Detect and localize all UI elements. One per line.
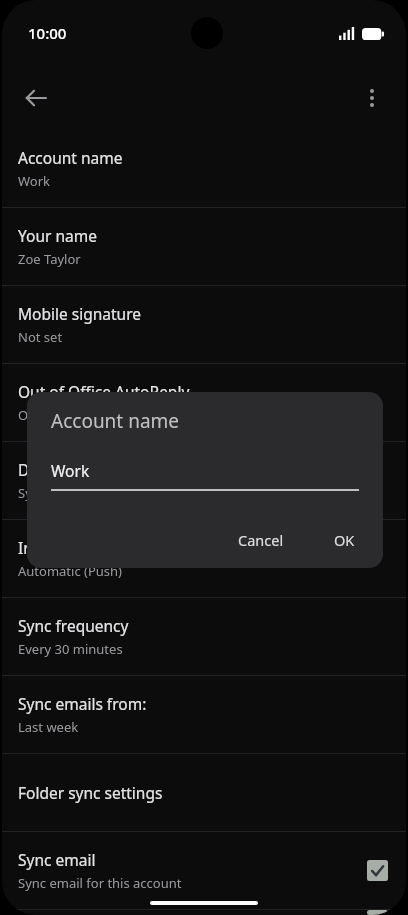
staticText: Sync email [18,849,96,870]
button[interactable]: More options [350,76,394,120]
staticText: Cancel [238,530,284,550]
staticText: Off [18,406,38,424]
staticText: Work [18,172,51,190]
staticText: Data usage [18,459,101,480]
button[interactable]: Sync emails from: [2,676,406,753]
staticText: Last week [18,718,79,736]
staticText: Your name [18,225,97,246]
staticText: OK [334,530,355,550]
button[interactable]: Out of Office AutoReply [2,364,406,441]
staticText: Sync settings [18,484,98,502]
staticText: Account name [51,408,180,434]
staticText: Out of Office AutoReply [18,381,190,402]
staticText: Not set [18,328,63,346]
button[interactable]: Data usage [2,442,406,519]
staticText: Sync frequency [18,615,129,636]
button[interactable]: Sync frequency [2,598,406,675]
button[interactable]: Your name [2,208,406,285]
staticText: Sync contacts [18,910,117,915]
button[interactable]: Sync email [2,832,406,909]
button[interactable]: Folder sync settings [2,754,406,831]
staticText: Inbox check frequency [18,537,183,558]
button[interactable]: Mobile signature [2,286,406,363]
staticText: Work [51,460,90,481]
button[interactable]: Sync contacts [2,910,406,915]
staticText: Account name [18,147,123,168]
button[interactable]: Back [12,74,60,122]
button[interactable]: OK [322,522,367,558]
staticText: Mobile signature [18,303,141,324]
staticText: Every 30 minutes [18,640,123,658]
staticText: Sync emails from: [18,693,147,714]
staticText: Sync email for this account [18,874,182,892]
button[interactable]: Cancel [226,522,296,558]
button[interactable]: Inbox check frequency [2,520,406,597]
staticText: 10:00 [28,23,67,43]
staticText: Automatic (Push) [18,562,122,580]
staticText: Folder sync settings [18,782,163,803]
button[interactable]: Account name [2,130,406,207]
staticText: Zoe Taylor [18,250,81,268]
